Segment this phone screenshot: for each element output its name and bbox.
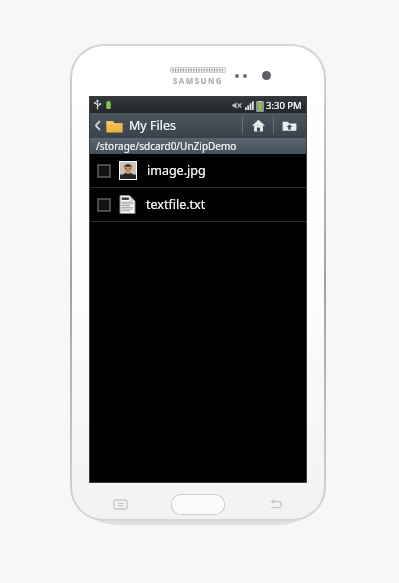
button[interactable]: Parent folder <box>274 113 304 138</box>
staticText: /storage/sdcard0/UnZipDemo <box>96 139 237 153</box>
button[interactable]: Home folder <box>243 113 273 138</box>
button[interactable]: Home <box>171 494 225 515</box>
button[interactable]: Menu <box>114 500 127 509</box>
button[interactable]: Back <box>269 499 282 510</box>
staticText: 3:30 PM <box>266 99 302 112</box>
button[interactable]: Select textfile.txt <box>98 199 110 211</box>
button[interactable]: Select image.jpg <box>98 165 110 177</box>
button[interactable]: Select image.jpg <box>90 154 306 187</box>
staticText: textfile.txt <box>146 196 206 213</box>
staticText: image.jpg <box>147 162 206 179</box>
staticText: My Files <box>129 117 176 134</box>
button[interactable]: Select textfile.txt <box>90 188 306 221</box>
other: Up <box>93 119 103 132</box>
button[interactable]: Up <box>93 113 176 138</box>
staticText: SAMSUNG <box>173 75 224 86</box>
